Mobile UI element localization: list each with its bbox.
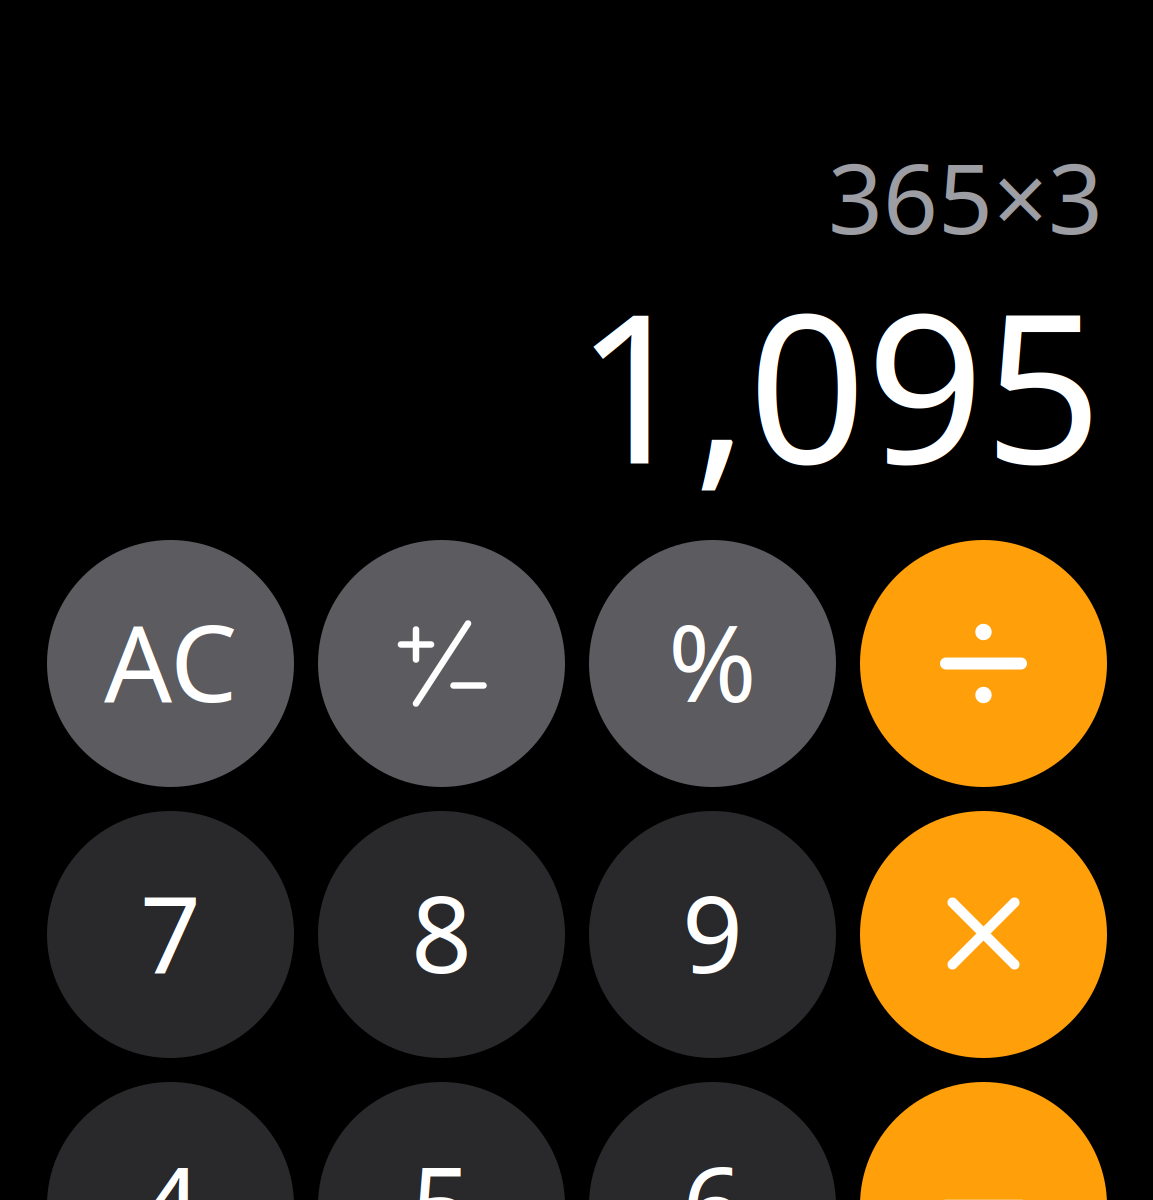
- button[interactable]: Multiply: [860, 811, 1107, 1058]
- staticText: 8: [411, 861, 472, 1002]
- button[interactable]: Plus Minus: [318, 540, 565, 787]
- staticText: 9: [682, 861, 743, 1002]
- staticText: 7: [140, 861, 201, 1002]
- button[interactable]: 4: [47, 1082, 294, 1200]
- button[interactable]: 5: [318, 1082, 565, 1200]
- staticText: 1,095: [575, 246, 1102, 520]
- button[interactable]: Divide: [860, 540, 1107, 787]
- staticText: 5: [411, 1132, 472, 1200]
- staticText: 4: [140, 1132, 201, 1200]
- staticText: 365×3: [828, 133, 1103, 260]
- button[interactable]: 6: [589, 1082, 836, 1200]
- staticText: AC: [104, 590, 237, 731]
- button[interactable]: Subtract: [860, 1082, 1107, 1200]
- button[interactable]: %: [589, 540, 836, 787]
- button[interactable]: 7: [47, 811, 294, 1058]
- button[interactable]: AC: [47, 540, 294, 787]
- staticText: %: [668, 590, 757, 731]
- staticText: 6: [682, 1132, 743, 1200]
- button[interactable]: 8: [318, 811, 565, 1058]
- button[interactable]: 9: [589, 811, 836, 1058]
